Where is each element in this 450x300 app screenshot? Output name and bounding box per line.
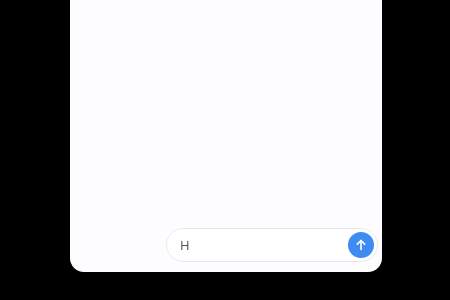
staticText: H [180, 236, 190, 254]
button[interactable]: H [166, 228, 378, 262]
button[interactable]: Send [348, 232, 374, 258]
